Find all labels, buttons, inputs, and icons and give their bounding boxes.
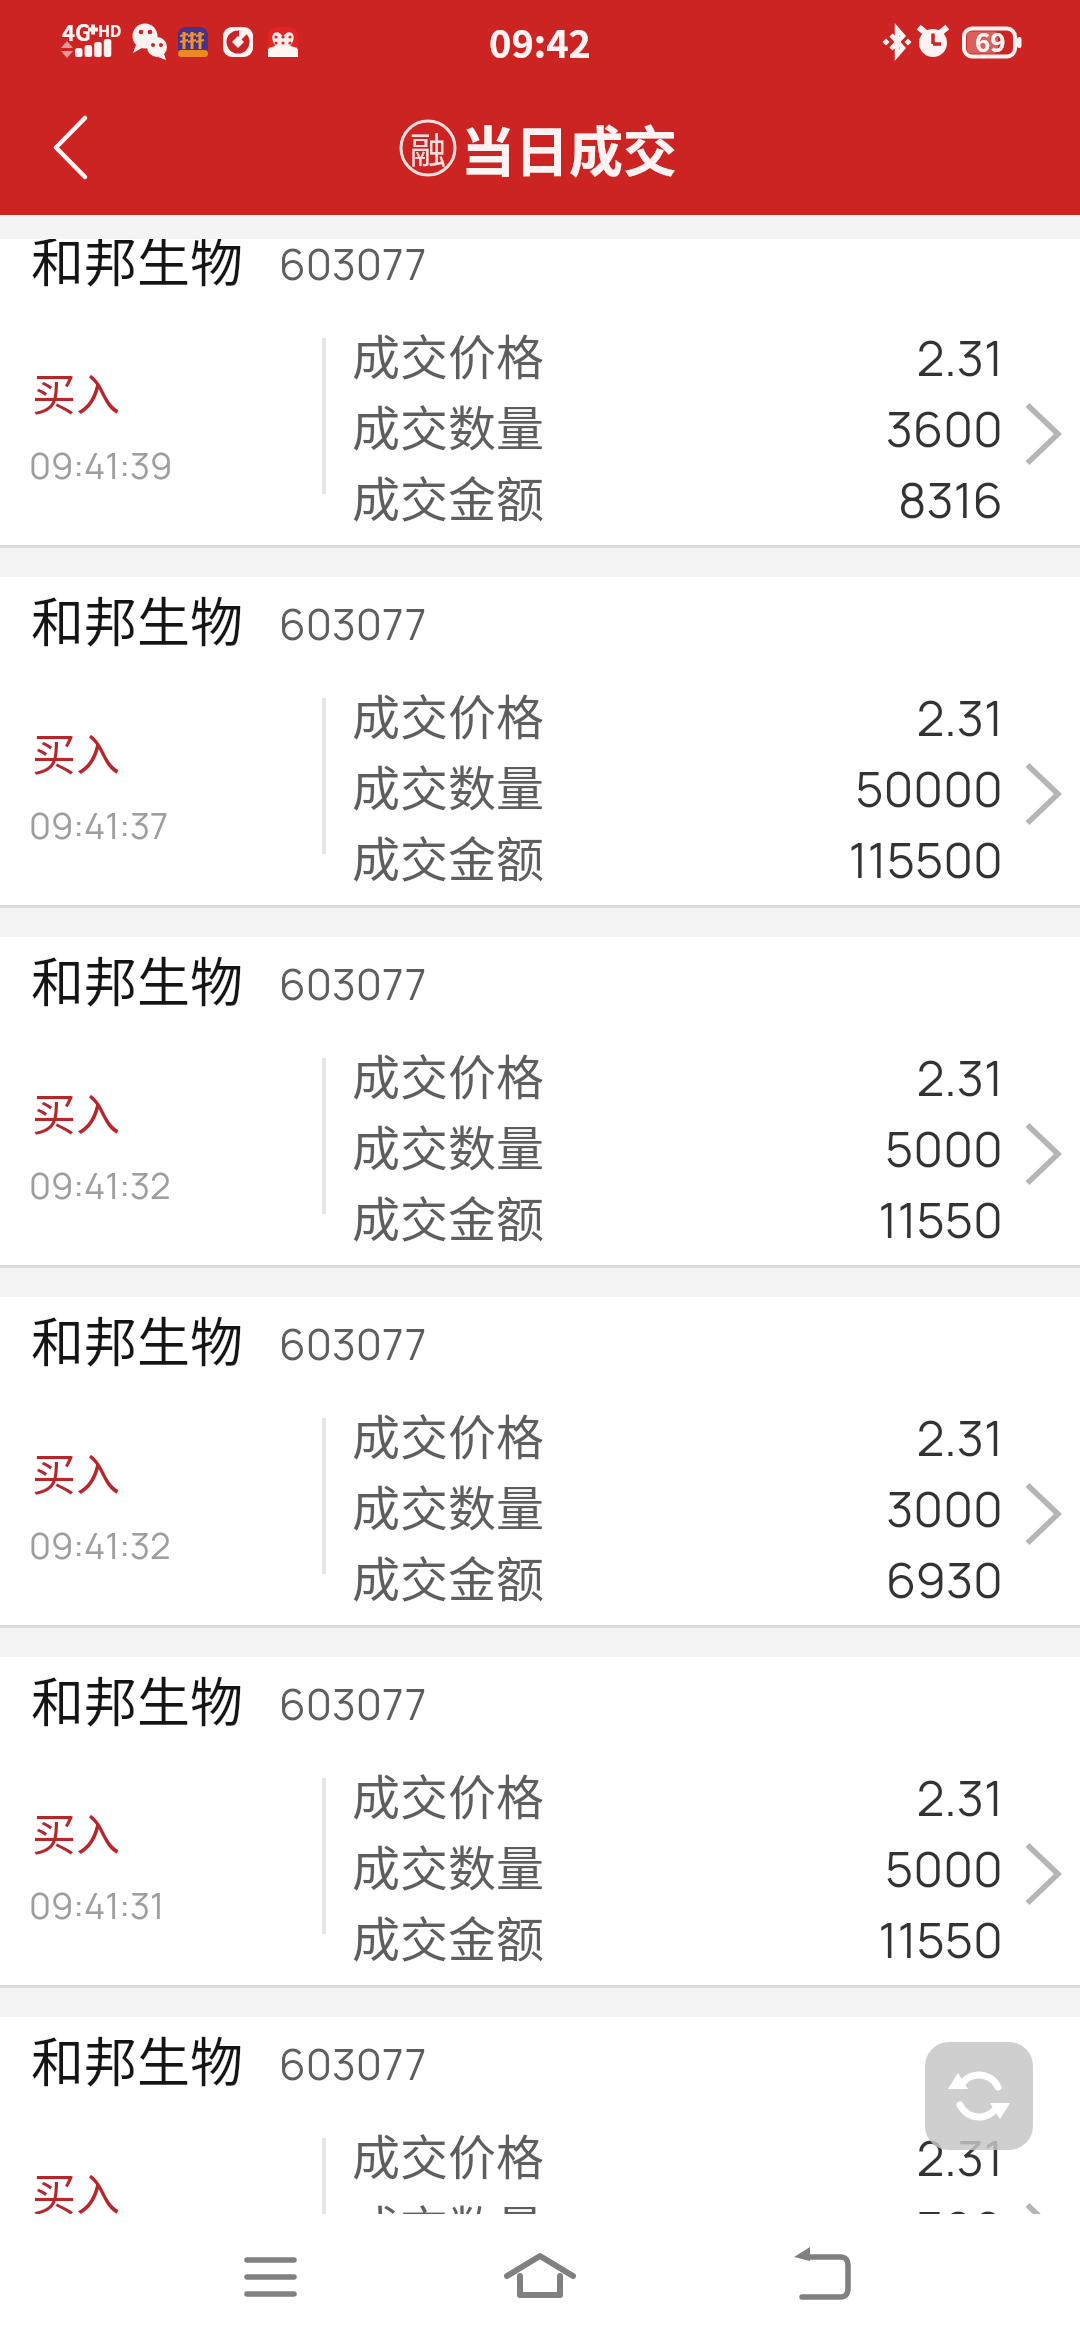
staticText: 5000 [0,1115,1003,1182]
staticText: 603077 [279,1674,427,1733]
button[interactable]: 和邦生物 [0,577,1080,905]
staticText: 2.31 [0,324,1003,391]
staticText: 09:41:39 [29,441,173,490]
button[interactable]: 和邦生物 [0,937,1080,1265]
staticText: 3000 [0,1475,1003,1542]
staticText: 成交价格 [352,319,545,389]
staticText: 09:42 [489,14,592,69]
staticText: 09:41:37 [29,801,169,850]
button[interactable]: Home [470,2214,610,2340]
staticText: 成交数量 [352,1830,545,1900]
staticText: 11550 [0,1906,1003,1973]
staticText: 和邦生物 [31,581,243,658]
staticText: 成交价格 [352,679,545,749]
staticText: 和邦生物 [31,2021,243,2098]
staticText: 603077 [279,1314,427,1373]
staticText: 买入 [32,360,120,424]
staticText: 买入 [32,1440,120,1504]
staticText: 成交数量 [352,750,545,820]
staticText: 买入 [32,1800,120,1864]
staticText: 当日成交 [461,109,677,187]
staticText: 2.31 [0,2124,1003,2191]
staticText: 5000 [0,1835,1003,1902]
staticText: 成交价格 [352,2119,545,2189]
staticText: 09:41:31 [29,1881,165,1930]
button[interactable]: Back [0,80,140,215]
staticText: 成交数量 [352,1110,545,1180]
button[interactable]: Back [753,2214,893,2340]
staticText: 09:41:32 [29,1161,171,1210]
button[interactable]: 和邦生物 [0,1657,1080,1985]
staticText: 买入 [32,720,120,784]
button[interactable]: Recent apps [201,2214,341,2340]
staticText: 成交数量 [352,390,545,460]
staticText: 603077 [279,594,427,653]
staticText: 603077 [279,954,427,1013]
staticText: 成交金额 [352,1541,545,1611]
staticText: 2.31 [0,684,1003,751]
staticText: HD [98,18,122,41]
button[interactable]: 和邦生物 [0,239,1080,545]
staticText: 8316 [0,466,1003,533]
staticText: 融 [410,122,447,174]
staticText: 成交价格 [352,1399,545,1469]
staticText: 300 [0,2195,1003,2214]
staticText: 买入 [32,2160,120,2214]
staticText: 09:41:32 [29,1521,171,1570]
staticText: 成交价格 [352,1759,545,1829]
staticText: 和邦生物 [31,941,243,1018]
staticText: 成交价格 [352,1039,545,1109]
button[interactable]: 和邦生物 [0,2017,1080,2214]
staticText: 2.31 [0,1404,1003,1471]
staticText: 成交金额 [352,1181,545,1251]
staticText: 6930 [0,1546,1003,1613]
staticText: 3600 [0,395,1003,462]
button[interactable]: Refresh [925,2042,1033,2150]
staticText: 和邦生物 [31,239,243,298]
staticText: 2.31 [0,1764,1003,1831]
staticText: 50000 [0,755,1003,822]
button[interactable]: 和邦生物 [0,1297,1080,1625]
staticText: 和邦生物 [31,1661,243,1738]
staticText: 2.31 [0,1044,1003,1111]
staticText: 11550 [0,1186,1003,1253]
staticText: 成交金额 [352,461,545,531]
staticText: 603077 [279,239,427,293]
staticText: 603077 [279,2034,427,2093]
staticText: 买入 [32,1080,120,1144]
staticText: 和邦生物 [31,1301,243,1378]
staticText: 成交金额 [352,1901,545,1971]
staticText: 69 [975,22,1006,60]
staticText: 4G [62,15,91,47]
staticText: 成交数量 [352,1470,545,1540]
staticText: 成交数量 [352,2190,545,2214]
staticText: 115500 [0,826,1003,893]
staticText: 成交金额 [352,821,545,891]
